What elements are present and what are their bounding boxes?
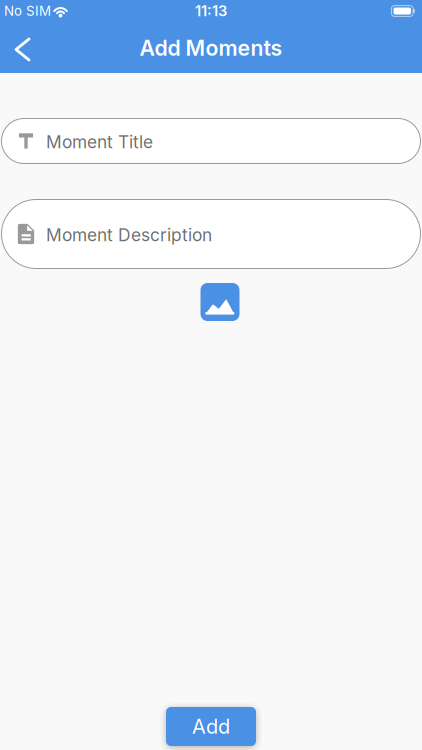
button[interactable]: Add [166,707,256,746]
staticText: Add [192,715,230,738]
staticText: Add Moments [139,35,282,61]
button[interactable]: Moment Description [0,199,422,269]
button[interactable]: Pick Image [200,283,239,321]
staticText: Moment Title [46,132,153,152]
button[interactable]: Back [0,26,43,73]
button[interactable]: Moment Title [0,118,422,164]
staticText: No SIM [4,3,51,19]
staticText: 11:13 [195,2,227,20]
staticText: Moment Description [46,225,212,245]
